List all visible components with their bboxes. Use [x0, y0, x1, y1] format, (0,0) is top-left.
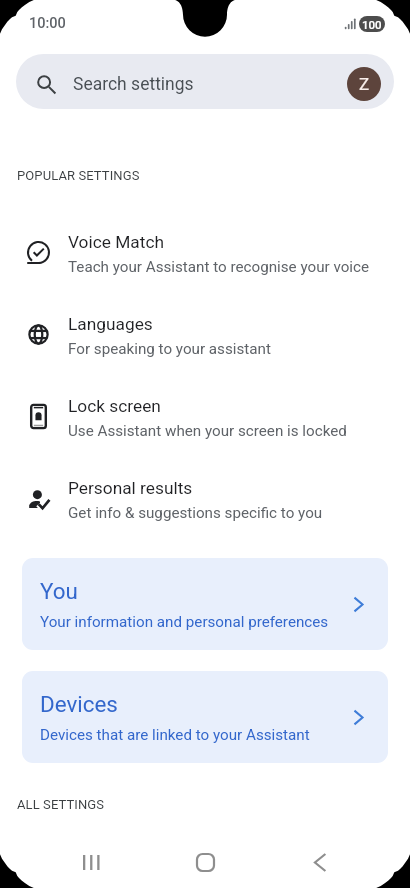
button[interactable]: Personal results	[0, 462, 410, 544]
button[interactable]: Account	[347, 67, 381, 101]
staticText: Your information and personal preference…	[40, 613, 329, 631]
staticText: 100	[362, 18, 382, 31]
staticText: You	[40, 578, 78, 604]
staticText: Use Assistant when your screen is locked	[68, 422, 347, 440]
button[interactable]: Voice Match	[0, 216, 410, 298]
staticText: Lock screen	[68, 396, 161, 416]
staticText: Devices	[40, 691, 118, 717]
staticText: Devices that are linked to your Assistan…	[40, 726, 310, 744]
staticText: POPULAR SETTINGS	[17, 168, 140, 183]
button[interactable]: Lock screen	[0, 380, 410, 462]
button[interactable]: Recents	[66, 828, 410, 888]
staticText: Languages	[68, 314, 153, 334]
button[interactable]: Languages	[0, 298, 410, 380]
button[interactable]: Home	[181, 828, 410, 888]
button[interactable]: Back	[296, 828, 410, 888]
staticText: Get info & suggestions specific to you	[68, 504, 323, 522]
staticText: For speaking to your assistant	[68, 340, 271, 358]
button[interactable]: Devices	[22, 671, 388, 763]
button[interactable]: Search settings	[16, 54, 394, 109]
staticText: ALL SETTINGS	[17, 797, 105, 812]
staticText: Personal results	[68, 478, 193, 498]
button[interactable]: You	[22, 558, 388, 650]
staticText: 10:00	[29, 15, 66, 32]
staticText: Teach your Assistant to recognise your v…	[68, 258, 370, 276]
staticText: Z	[359, 74, 370, 94]
staticText: Search settings	[73, 74, 194, 95]
staticText: Voice Match	[68, 232, 164, 252]
